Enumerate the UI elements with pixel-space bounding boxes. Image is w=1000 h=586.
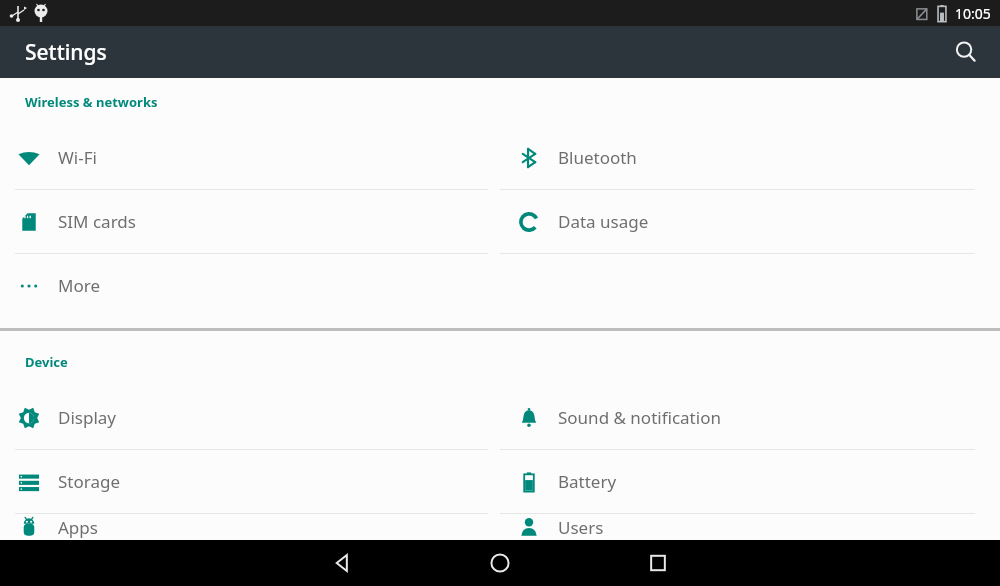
staticText: Wi-Fi — [58, 146, 97, 169]
staticText: Bluetooth — [558, 146, 637, 169]
staticText: More — [58, 274, 100, 297]
staticText: Settings — [25, 38, 107, 67]
staticText: 10:05 — [955, 4, 991, 23]
button[interactable]: Home — [476, 540, 524, 586]
staticText: Users — [558, 516, 604, 539]
button[interactable]: Sound & notification — [500, 386, 1000, 449]
button[interactable]: SIM cards — [0, 190, 500, 253]
staticText: Storage — [58, 470, 121, 493]
button[interactable]: Storage — [0, 450, 500, 513]
staticText: Apps — [58, 516, 98, 539]
button[interactable]: Data usage — [500, 190, 1000, 253]
button[interactable]: Wi-Fi — [0, 126, 500, 189]
button[interactable]: Battery — [500, 450, 1000, 513]
button[interactable]: Back — [318, 540, 366, 586]
button[interactable]: More — [0, 254, 500, 317]
staticText: Wireless & networks — [25, 93, 158, 111]
button[interactable]: Search — [942, 28, 990, 76]
staticText: Display — [58, 406, 116, 429]
button[interactable]: Recents — [634, 540, 682, 586]
staticText: Device — [25, 353, 68, 371]
button[interactable]: Users — [500, 514, 1000, 540]
button[interactable]: Bluetooth — [500, 126, 1000, 189]
staticText: SIM cards — [58, 210, 136, 233]
button[interactable]: Display — [0, 386, 500, 449]
button[interactable]: Apps — [0, 514, 500, 540]
staticText: Sound & notification — [558, 406, 721, 429]
staticText: Battery — [558, 470, 617, 493]
staticText: Data usage — [558, 210, 649, 233]
